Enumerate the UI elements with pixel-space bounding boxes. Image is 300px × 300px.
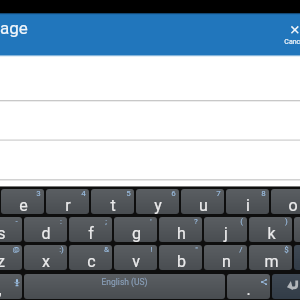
staticText: & <box>104 245 109 254</box>
staticText: age <box>0 18 28 38</box>
button[interactable]: x <box>24 245 67 270</box>
staticText: ( <box>240 217 243 226</box>
staticText: m <box>264 252 279 271</box>
staticText: h <box>177 224 186 243</box>
other: Voice input <box>14 279 20 286</box>
staticText: f <box>88 224 94 243</box>
staticText: v <box>132 252 140 271</box>
button[interactable]: f <box>69 217 112 242</box>
button[interactable]: e <box>1 189 44 214</box>
staticText: o <box>288 196 298 215</box>
staticText: :) <box>59 245 64 254</box>
button[interactable]: r <box>46 189 89 214</box>
staticText: : <box>60 217 62 226</box>
staticText: ! <box>150 245 153 254</box>
button[interactable]: z <box>0 245 22 270</box>
button[interactable]: u <box>181 189 224 214</box>
button[interactable]: m <box>249 245 292 270</box>
staticText: y <box>154 196 162 215</box>
staticText: @ <box>12 245 20 254</box>
staticText: n <box>222 252 231 271</box>
button[interactable]: t <box>91 189 134 214</box>
button[interactable]: y <box>136 189 179 214</box>
button[interactable]: Enter <box>272 274 300 299</box>
button[interactable]: b <box>159 245 202 270</box>
button[interactable]: k <box>249 217 292 242</box>
staticText: r <box>65 196 71 215</box>
staticText: ' <box>150 217 152 226</box>
button[interactable]: Period <box>227 274 270 299</box>
staticText: " <box>195 245 198 254</box>
button[interactable]: h <box>159 217 202 242</box>
staticText: 8 <box>261 189 266 198</box>
button[interactable]: v <box>114 245 157 270</box>
staticText: . <box>246 280 251 299</box>
button[interactable]: Backspace <box>294 245 300 270</box>
staticText: Cancel <box>284 38 300 46</box>
button[interactable]: Cancel <box>276 13 300 55</box>
staticText: c <box>87 252 96 271</box>
staticText: $ <box>284 245 289 254</box>
staticText: / <box>239 245 243 254</box>
staticText: 7 <box>216 189 221 198</box>
staticText: English (US) <box>101 277 148 287</box>
button[interactable]: j <box>204 217 247 242</box>
staticText: - <box>15 217 18 226</box>
staticText: 3 <box>36 189 41 198</box>
staticText: g <box>132 224 141 243</box>
staticText: b <box>177 252 186 271</box>
staticText: s <box>0 224 6 243</box>
staticText: ? <box>194 217 198 226</box>
staticText: z <box>0 252 5 271</box>
staticText: 6 <box>171 189 176 198</box>
staticText: 5 <box>126 189 131 198</box>
button[interactable]: c <box>69 245 112 270</box>
staticText: 4 <box>81 189 86 198</box>
button[interactable]: Comma <box>0 274 22 299</box>
button[interactable]: g <box>114 217 157 242</box>
staticText: , <box>0 280 2 299</box>
staticText: i <box>246 196 250 215</box>
staticText: t <box>110 196 116 215</box>
staticText: u <box>199 196 208 215</box>
staticText: ) <box>285 217 288 226</box>
staticText: e <box>19 196 28 215</box>
staticText: ; <box>105 217 107 226</box>
button[interactable]: d <box>24 217 67 242</box>
staticText: k <box>267 224 276 243</box>
button[interactable]: Space <box>24 274 225 299</box>
other: Enter <box>285 278 300 293</box>
staticText: j <box>224 224 228 243</box>
button[interactable]: i <box>226 189 269 214</box>
button[interactable]: New message <box>0 13 300 55</box>
button[interactable]: l <box>294 217 300 242</box>
button[interactable]: s <box>0 217 22 242</box>
staticText: d <box>41 224 51 243</box>
button[interactable]: n <box>204 245 247 270</box>
button[interactable]: o <box>271 189 300 214</box>
staticText: x <box>42 252 50 271</box>
